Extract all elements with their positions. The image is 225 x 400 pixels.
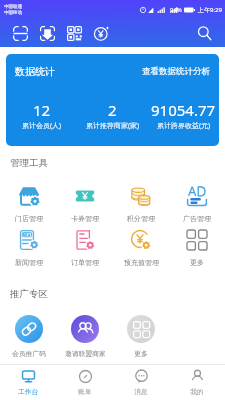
staticText: 会员推广码: [12, 349, 46, 358]
staticText: 上午9:29: [198, 6, 222, 14]
button[interactable]: 积分管理: [113, 186, 169, 223]
staticText: 消息: [134, 387, 148, 396]
staticText: 积分管理: [127, 214, 155, 223]
button[interactable]: 邀请联盟商家: [57, 315, 113, 358]
staticText: 卡券管理: [71, 214, 99, 223]
button[interactable]: 账单: [57, 365, 113, 400]
button[interactable]: 门店管理: [0, 186, 57, 223]
button[interactable]: 预充值管理: [113, 230, 169, 267]
staticText: 账单: [78, 387, 92, 396]
staticText: 数据统计: [15, 65, 55, 78]
staticText: 累计推荐商家(家): [86, 121, 140, 131]
button[interactable]: 二维码: [66, 25, 82, 41]
button[interactable]: 搜索: [196, 25, 212, 41]
button[interactable]: 消息: [113, 365, 169, 400]
staticText: 新闻管理: [15, 258, 43, 267]
staticText: 我的: [190, 387, 204, 396]
staticText: 推广专区: [10, 288, 48, 300]
button[interactable]: 广告管理: [169, 186, 225, 223]
button[interactable]: 我的: [169, 365, 225, 400]
staticText: 工作台: [18, 387, 39, 396]
staticText: 2: [108, 100, 117, 120]
staticText: 91054.77: [151, 100, 216, 120]
button[interactable]: 新闻管理: [0, 230, 57, 267]
button[interactable]: 工作台: [0, 365, 57, 400]
staticText: 累计会员(人): [22, 121, 62, 131]
staticText: 更多: [190, 258, 204, 267]
button[interactable]: 更多: [113, 315, 169, 358]
button[interactable]: 卡券管理: [57, 186, 113, 223]
staticText: 更多: [134, 349, 148, 358]
button[interactable]: 收款: [93, 25, 109, 41]
staticText: 邀请联盟商家: [65, 349, 106, 358]
staticText: 预充值管理: [124, 258, 159, 267]
staticText: 广告管理: [183, 214, 211, 223]
staticText: 12: [33, 100, 51, 120]
staticText: 94%: [170, 6, 182, 14]
staticText: 查看数据统计分析: [142, 66, 210, 77]
staticText: 订单管理: [71, 258, 99, 267]
button[interactable]: 更多: [169, 230, 225, 267]
staticText: 中国移动: [4, 10, 22, 16]
staticText: 中国联通: [4, 4, 22, 10]
button[interactable]: 扫一扫: [12, 25, 28, 41]
button[interactable]: 数据统计: [6, 54, 219, 146]
staticText: 管理工具: [10, 157, 48, 169]
button[interactable]: 会员收款: [39, 25, 55, 41]
staticText: 门店管理: [15, 214, 43, 223]
staticText: 累计跨界收益(元): [157, 121, 211, 131]
button[interactable]: 会员推广码: [0, 315, 57, 358]
button[interactable]: 订单管理: [57, 230, 113, 267]
